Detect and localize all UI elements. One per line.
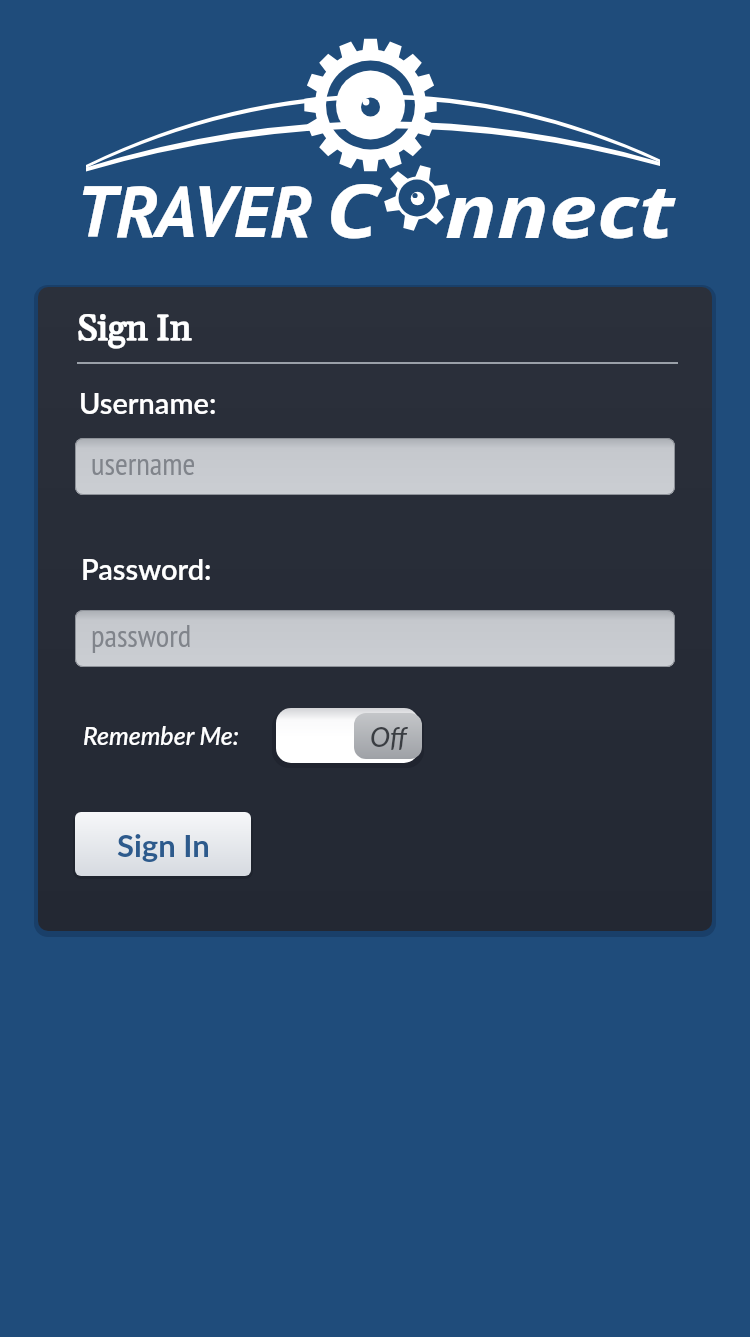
staticText: Sign In xyxy=(77,306,192,353)
staticText: username xyxy=(91,443,196,483)
staticText: C xyxy=(326,160,379,259)
staticText: nnect xyxy=(445,160,675,259)
button[interactable]: username xyxy=(75,438,675,495)
staticText: Sign In xyxy=(117,826,210,863)
staticText: TRAVER xyxy=(76,164,313,257)
staticText: Username: xyxy=(79,385,217,420)
button[interactable]: password xyxy=(75,610,675,667)
staticText: Password: xyxy=(81,551,212,586)
button[interactable]: Sign In xyxy=(75,812,251,876)
staticText: password xyxy=(91,615,192,655)
staticText: Remember Me: xyxy=(83,720,240,750)
staticText: Off xyxy=(370,720,407,752)
button[interactable]: Off xyxy=(276,708,419,763)
